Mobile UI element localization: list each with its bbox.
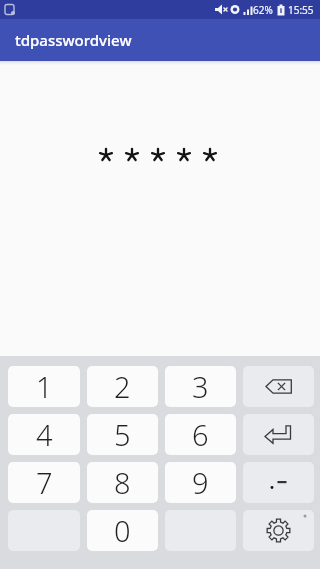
staticText: tdpasswordview (15, 30, 132, 50)
staticText: 15:55 (288, 3, 314, 17)
button[interactable]: 1 (8, 366, 80, 407)
button[interactable]: 8 (87, 462, 158, 503)
button[interactable]: 3 (165, 366, 236, 407)
button[interactable] (243, 366, 314, 407)
staticText: 62% (253, 3, 273, 17)
staticText: 1 (36, 367, 53, 406)
staticText: 4 (36, 415, 53, 454)
staticText: 2 (114, 367, 131, 406)
staticText: 8 (114, 463, 131, 502)
button[interactable]: 5 (87, 414, 158, 455)
button[interactable]: 4 (8, 414, 80, 455)
button[interactable]: 0 (87, 510, 158, 551)
button[interactable]: 6 (165, 414, 236, 455)
staticText: 6 (192, 415, 209, 454)
button[interactable]: 9 (165, 462, 236, 503)
staticText: 5 (114, 415, 131, 454)
button[interactable] (243, 510, 314, 551)
staticText: 3 (192, 367, 209, 406)
staticText: 9 (192, 463, 209, 502)
button[interactable]: 2 (87, 366, 158, 407)
staticText: 7 (36, 463, 53, 502)
button[interactable]: 7 (8, 462, 80, 503)
button[interactable] (243, 414, 314, 455)
button[interactable] (243, 462, 314, 503)
staticText: 0 (114, 511, 131, 550)
